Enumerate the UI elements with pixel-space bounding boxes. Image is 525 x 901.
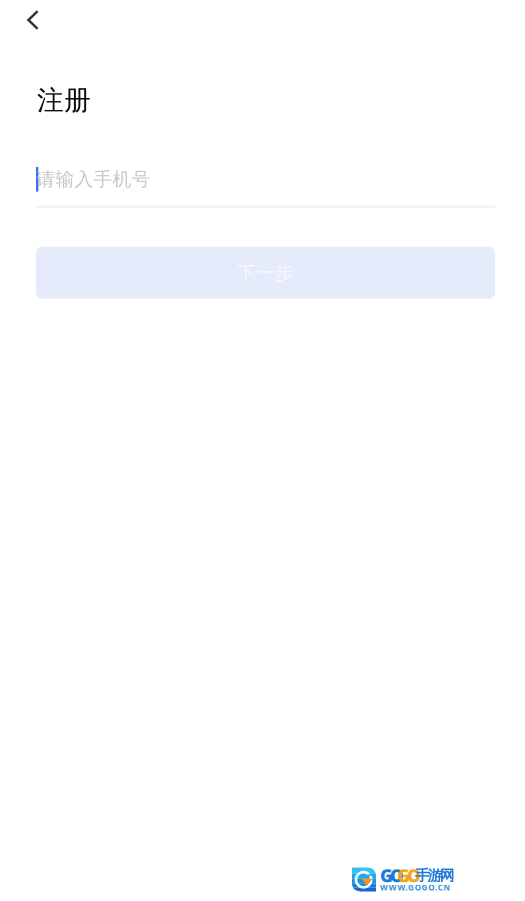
staticText: 请输入手机号 [36,168,150,191]
staticText: GO [397,864,421,887]
staticText: 注册 [37,84,91,117]
staticText: 下一步 [237,261,294,284]
button[interactable]: 请输入手机号 [36,167,495,208]
staticText: GO [380,864,404,887]
staticText: WWW.GOGO.CN [380,882,450,893]
button[interactable]: Back [0,0,52,40]
staticText: 手游网 [415,866,455,884]
